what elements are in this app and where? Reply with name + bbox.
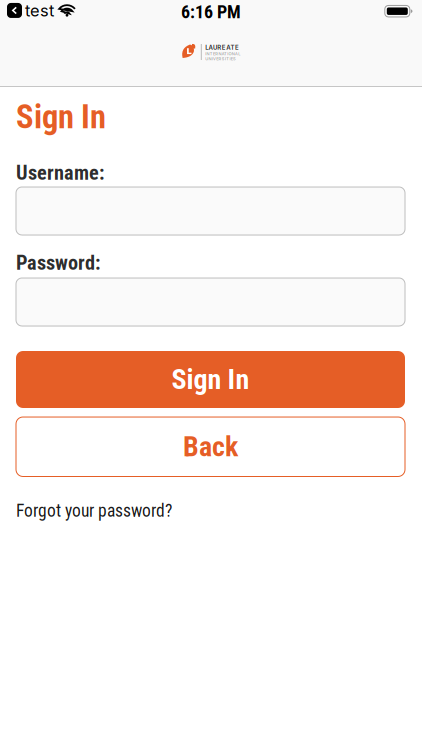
button[interactable]: Username [16, 187, 405, 235]
staticText: Sign In [171, 363, 249, 396]
staticText: Sign In [16, 98, 106, 136]
staticText: Forgot your password? [16, 500, 172, 521]
staticText: 6:16 PM [181, 1, 241, 23]
staticText: test [25, 0, 54, 20]
button[interactable]: Sign In [16, 351, 405, 408]
staticText: UNIVERSITIES [205, 56, 236, 61]
staticText: Back [183, 430, 238, 463]
staticText: INTERNATIONAL [205, 51, 240, 56]
staticText: LAUREATE [205, 44, 239, 51]
button[interactable]: Password [16, 278, 405, 326]
staticText: Password: [16, 251, 101, 275]
button[interactable]: Back [16, 417, 405, 476]
button[interactable]: Forgot your password? [16, 500, 172, 521]
staticText: Username: [16, 161, 105, 185]
